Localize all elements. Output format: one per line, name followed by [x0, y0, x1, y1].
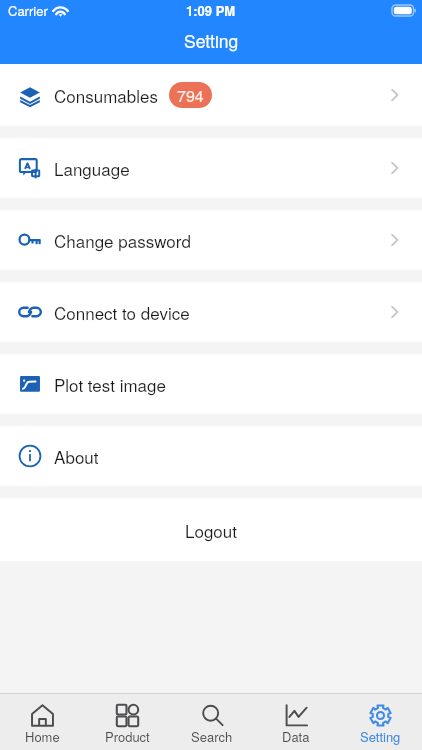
staticText: Product — [105, 727, 150, 746]
staticText: 1:09 PM — [186, 1, 236, 20]
button[interactable]: Setting — [338, 693, 422, 750]
staticText: Setting — [360, 727, 401, 746]
staticText: Logout — [185, 518, 237, 542]
staticText: Change password — [54, 228, 191, 252]
staticText: Plot test image — [54, 372, 166, 396]
button[interactable]: Product — [85, 693, 170, 750]
button[interactable]: About — [0, 426, 422, 486]
button[interactable]: Home — [0, 693, 85, 750]
staticText: Setting — [184, 28, 239, 53]
staticText: Data — [282, 727, 310, 746]
button[interactable]: Search — [170, 693, 254, 750]
staticText: About — [54, 444, 99, 468]
button[interactable]: Plot test image — [0, 354, 422, 414]
staticText: Consumables — [54, 83, 158, 107]
staticText: Connect to device — [54, 300, 190, 324]
staticText: Search — [191, 727, 233, 746]
button[interactable]: Language — [0, 138, 422, 198]
button[interactable]: Connect to device — [0, 282, 422, 342]
button[interactable]: Change password — [0, 210, 422, 270]
button[interactable]: Data — [254, 693, 338, 750]
button[interactable]: Consumables — [0, 64, 422, 126]
staticText: 794 — [177, 84, 204, 107]
staticText: Language — [54, 156, 130, 180]
staticText: Carrier — [8, 1, 48, 20]
staticText: Home — [25, 727, 60, 746]
button[interactable]: Logout — [0, 498, 422, 561]
